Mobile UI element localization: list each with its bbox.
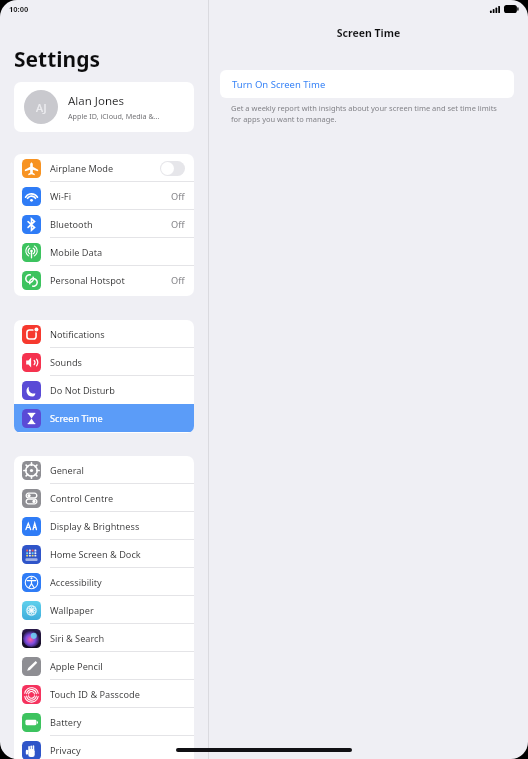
staticText: Screen Time xyxy=(50,412,185,425)
staticText: Accessibility xyxy=(50,576,185,589)
staticText: AJ xyxy=(36,100,47,115)
staticText: Display & Brightness xyxy=(50,520,185,533)
staticText: Personal Hotspot xyxy=(50,274,171,287)
staticText: Notifications xyxy=(50,328,185,341)
staticText: Battery xyxy=(50,716,185,729)
staticText: Screen Time xyxy=(209,26,528,40)
button[interactable]: Battery xyxy=(14,708,194,736)
staticText: Do Not Disturb xyxy=(50,384,185,397)
button[interactable]: Home Screen & Dock xyxy=(14,540,194,568)
staticText: Wallpaper xyxy=(50,604,185,617)
button[interactable]: Siri & Search xyxy=(14,624,194,652)
button[interactable]: Airplane Mode toggle xyxy=(160,161,185,176)
staticText: General xyxy=(50,464,185,477)
staticText: Apple ID, iCloud, Media &... xyxy=(68,111,160,121)
staticText: Apple Pencil xyxy=(50,660,185,673)
staticText: Touch ID & Passcode xyxy=(50,688,185,701)
staticText: Turn On Screen Time xyxy=(232,78,326,91)
staticText: Off xyxy=(171,218,185,231)
button[interactable]: Airplane Mode xyxy=(14,154,194,182)
staticText: Wi-Fi xyxy=(50,190,171,203)
button[interactable]: Apple Pencil xyxy=(14,652,194,680)
button[interactable]: Sounds xyxy=(14,348,194,376)
staticText: Control Centre xyxy=(50,492,185,505)
staticText: Sounds xyxy=(50,356,185,369)
staticText: Get a weekly report with insights about … xyxy=(231,103,509,124)
staticText: Settings xyxy=(14,45,101,74)
staticText: Siri & Search xyxy=(50,632,185,645)
button[interactable]: AJ xyxy=(14,82,194,132)
button[interactable]: Notifications xyxy=(14,320,194,348)
button[interactable]: Control Centre xyxy=(14,484,194,512)
button[interactable]: Do Not Disturb xyxy=(14,376,194,404)
button[interactable]: Privacy xyxy=(14,736,194,759)
staticText: Mobile Data xyxy=(50,246,185,259)
button[interactable]: Screen Time xyxy=(14,404,194,432)
staticText: Bluetooth xyxy=(50,218,171,231)
button[interactable]: Wi-Fi xyxy=(14,182,194,210)
button[interactable]: Mobile Data xyxy=(14,238,194,266)
staticText: Off xyxy=(171,274,185,287)
staticText: 10:00 xyxy=(9,4,29,14)
staticText: Privacy xyxy=(50,744,185,757)
button[interactable]: Bluetooth xyxy=(14,210,194,238)
button[interactable]: Accessibility xyxy=(14,568,194,596)
button[interactable]: Turn On Screen Time xyxy=(220,70,514,98)
staticText: Alan Jones xyxy=(68,93,125,109)
staticText: Home Screen & Dock xyxy=(50,548,185,561)
button[interactable]: Touch ID & Passcode xyxy=(14,680,194,708)
button[interactable]: Wallpaper xyxy=(14,596,194,624)
button[interactable]: Display & Brightness xyxy=(14,512,194,540)
button[interactable]: General xyxy=(14,456,194,484)
staticText: Off xyxy=(171,190,185,203)
button[interactable]: Personal Hotspot xyxy=(14,266,194,294)
staticText: Airplane Mode xyxy=(50,162,160,175)
